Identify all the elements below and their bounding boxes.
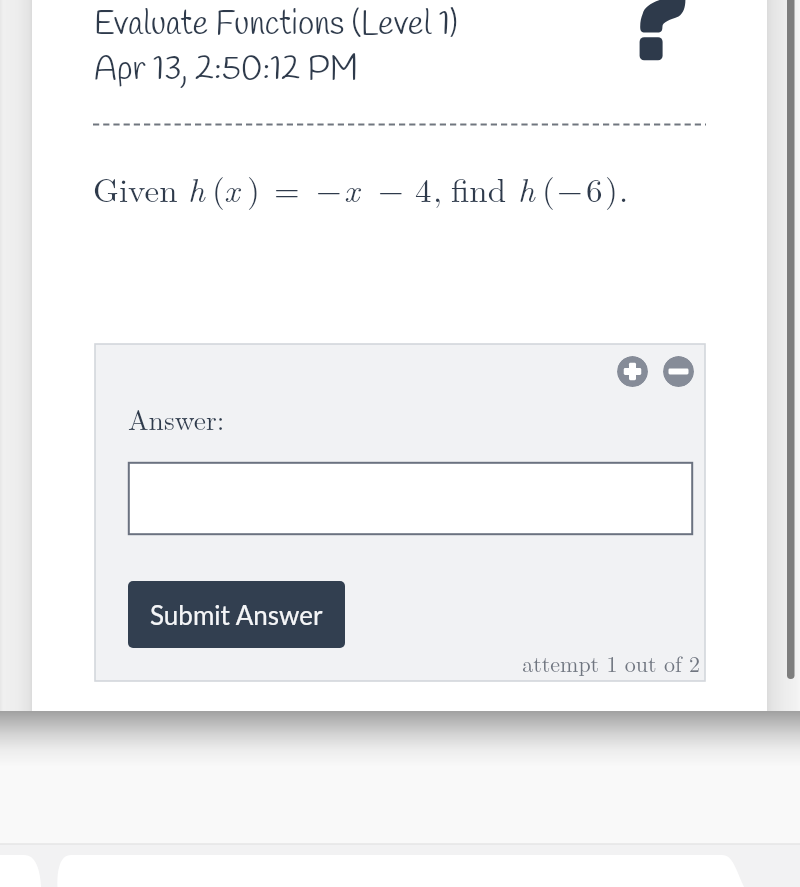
staticText: attempt 1 out of 2 [453, 647, 700, 677]
staticText: . [619, 165, 629, 212]
staticText: , [433, 165, 443, 212]
button[interactable]: Zoom out [663, 356, 694, 387]
staticText: h [518, 165, 535, 212]
staticText: − [316, 165, 342, 212]
staticText: ) [247, 165, 260, 212]
button[interactable]: Answer input field [128, 462, 693, 535]
staticText: Apr 13, 2:50:12 PM [94, 48, 359, 92]
button[interactable]: Submit Answer [128, 581, 345, 648]
staticText: ) [605, 165, 618, 212]
staticText: x [224, 165, 240, 212]
staticText: ( [212, 165, 225, 212]
staticText: Evaluate Functions (Level 1) [94, 3, 458, 47]
staticText: 6 [586, 165, 603, 212]
staticText: h [188, 165, 205, 212]
staticText: find [451, 165, 507, 212]
staticText: 4 [415, 165, 432, 212]
staticText: x [344, 165, 360, 212]
staticText: = [274, 165, 300, 212]
button[interactable]: Zoom in [617, 356, 648, 387]
staticText: Given [93, 165, 178, 212]
staticText: ( [542, 165, 555, 212]
staticText: Answer: [128, 399, 225, 438]
staticText: − [557, 165, 583, 212]
button[interactable]: Help [628, 0, 690, 64]
staticText: Submit Answer [150, 599, 323, 630]
staticText: − [378, 165, 404, 212]
